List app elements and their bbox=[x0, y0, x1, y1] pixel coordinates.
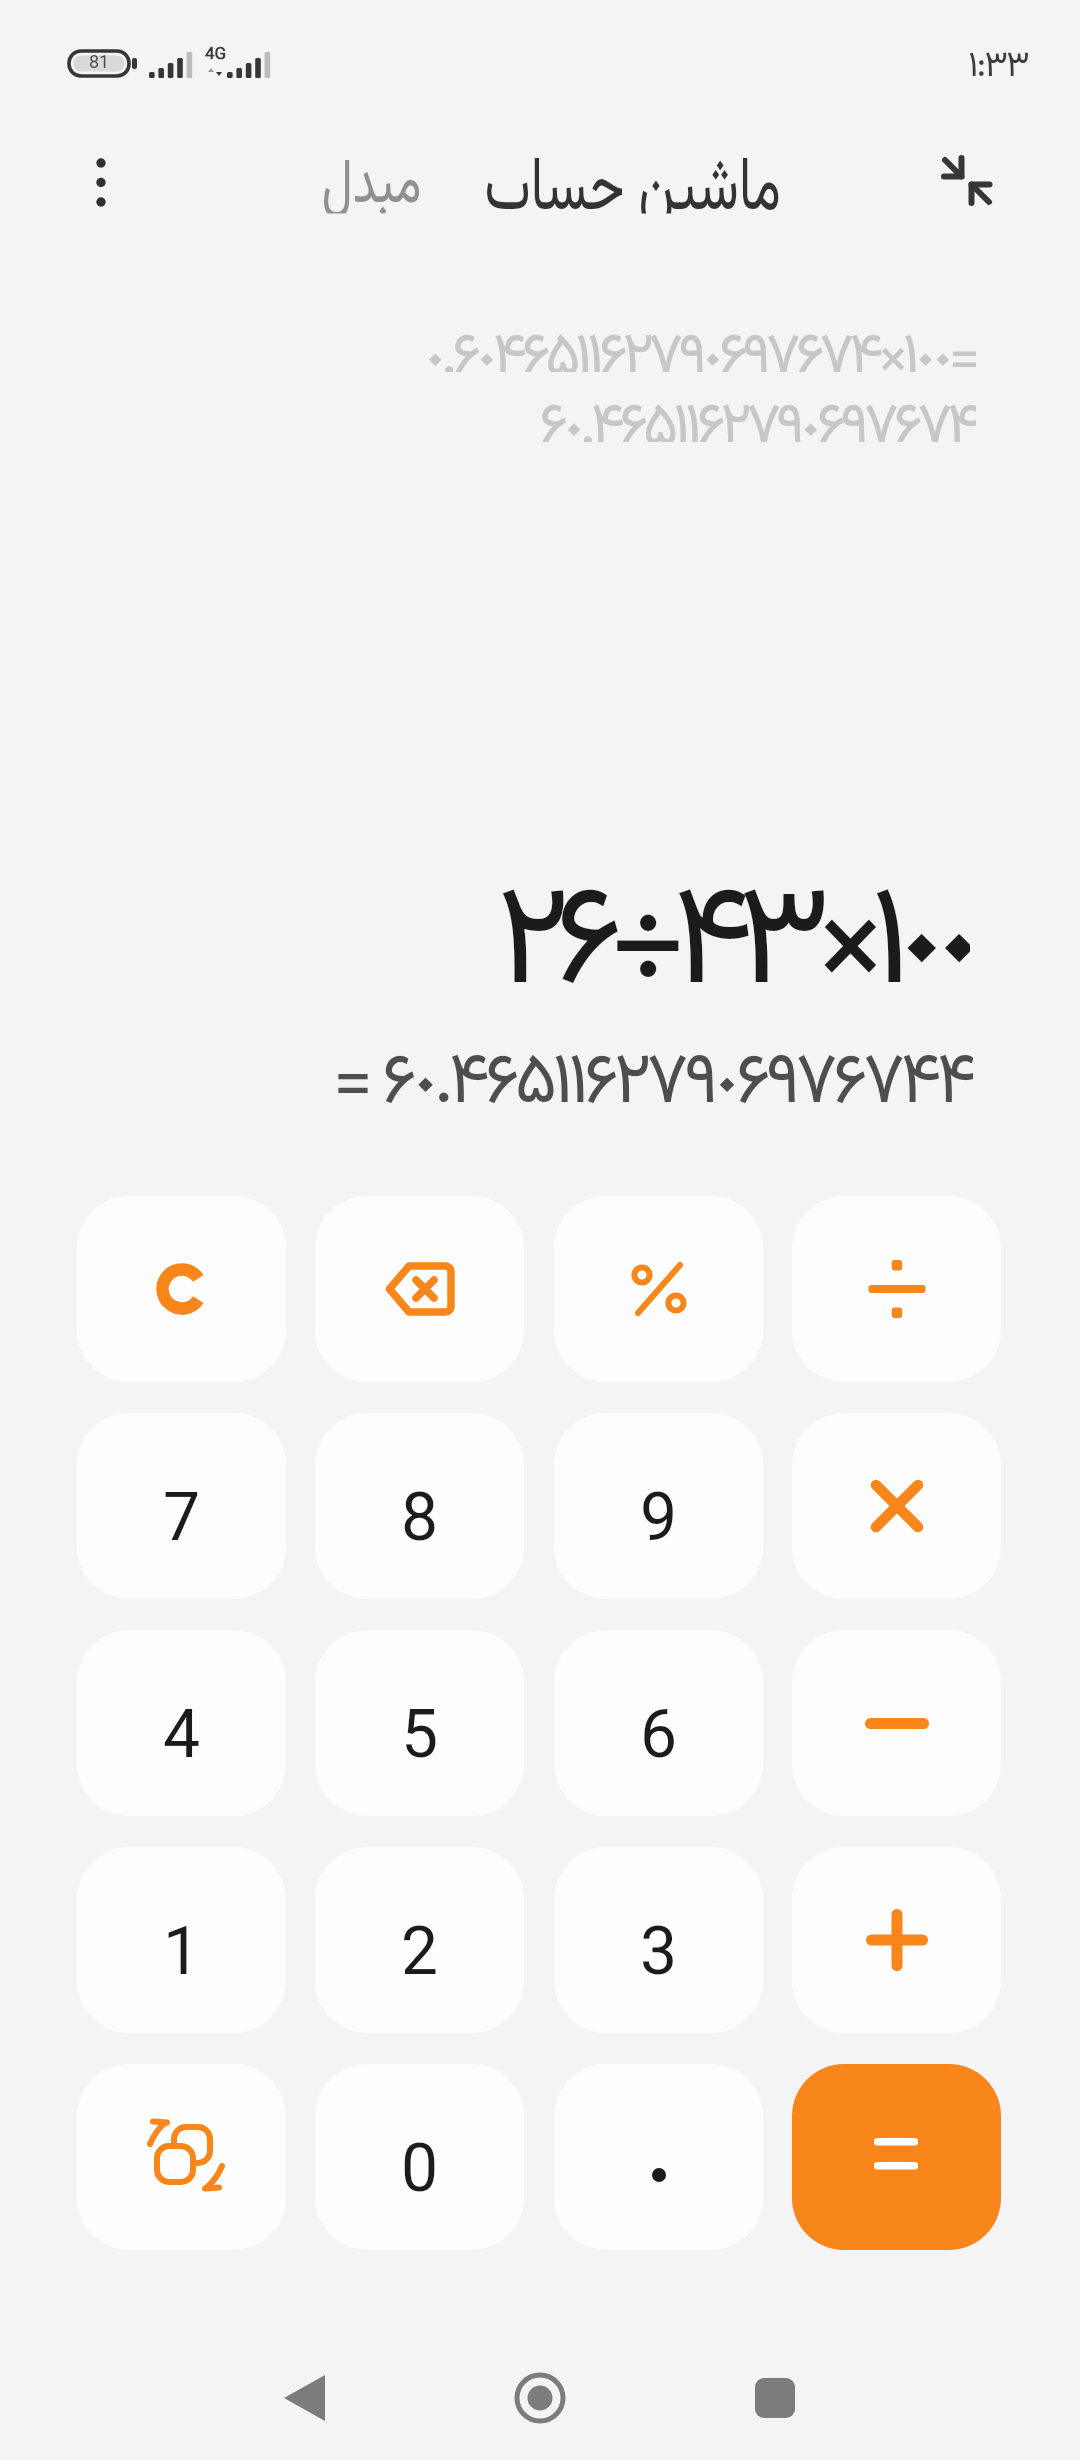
button[interactable] bbox=[792, 1630, 1001, 1816]
button[interactable]: 5 bbox=[315, 1630, 524, 1816]
button[interactable] bbox=[508, 2366, 572, 2430]
button[interactable]: ماشین حساب bbox=[422, 138, 843, 206]
staticText: 81 bbox=[89, 50, 110, 78]
button[interactable] bbox=[792, 1847, 1001, 2033]
button[interactable] bbox=[792, 1413, 1001, 1599]
button[interactable]: 6 bbox=[554, 1630, 763, 1816]
button[interactable] bbox=[275, 2366, 339, 2430]
staticText: 7 bbox=[163, 1472, 201, 1575]
button[interactable]: 2 bbox=[315, 1847, 524, 2033]
staticText: ماشین حساب bbox=[484, 130, 781, 213]
staticText: 3 bbox=[640, 1906, 678, 2009]
staticText: 8 bbox=[401, 1472, 439, 1575]
button[interactable] bbox=[792, 2064, 1001, 2250]
staticText: 4G bbox=[205, 42, 227, 69]
button[interactable] bbox=[554, 1196, 763, 1382]
staticText: 4 bbox=[163, 1689, 201, 1792]
staticText: 0 bbox=[401, 2123, 439, 2226]
button[interactable]: 7 bbox=[77, 1413, 286, 1599]
button[interactable] bbox=[792, 1196, 1001, 1382]
staticText: مبدل bbox=[322, 139, 421, 213]
staticText: ۲۶÷۴۳×۱٠٠ bbox=[496, 836, 970, 996]
staticText: 2 bbox=[401, 1906, 439, 2009]
staticText: 1 bbox=[163, 1906, 201, 2009]
button[interactable] bbox=[554, 2064, 763, 2250]
button[interactable]: 0 bbox=[315, 2064, 524, 2250]
staticText: ۱:۳۳ bbox=[968, 39, 1028, 83]
button[interactable] bbox=[315, 1196, 524, 1382]
staticText: 5 bbox=[401, 1689, 439, 1792]
button[interactable]: 8 bbox=[315, 1413, 524, 1599]
button[interactable] bbox=[77, 2064, 286, 2250]
button[interactable]: 9 bbox=[554, 1413, 763, 1599]
button[interactable] bbox=[743, 2366, 807, 2430]
button[interactable]: مبدل bbox=[301, 142, 441, 210]
button[interactable] bbox=[79, 160, 123, 204]
button[interactable]: 4 bbox=[77, 1630, 286, 1816]
button[interactable] bbox=[77, 1196, 286, 1382]
staticText: 6 bbox=[640, 1689, 678, 1792]
staticText: ٠.۶٠۴۶۵۱۱۶۲۷۹٠۶۹۷۶۷۴×۱٠٠= bbox=[424, 312, 976, 372]
staticText: = ۶٠.۴۶۵۱۱۶۲۷۹٠۶۹۷۶۷۴۴ bbox=[333, 1028, 973, 1108]
button[interactable]: 3 bbox=[554, 1847, 763, 2033]
button[interactable]: 1 bbox=[77, 1847, 286, 2033]
staticText: 9 bbox=[640, 1472, 678, 1575]
staticText: ۶٠.۴۶۵۱۱۶۲۷۹٠۶۹۷۶۷۴ bbox=[539, 382, 976, 442]
button[interactable] bbox=[936, 147, 1000, 215]
